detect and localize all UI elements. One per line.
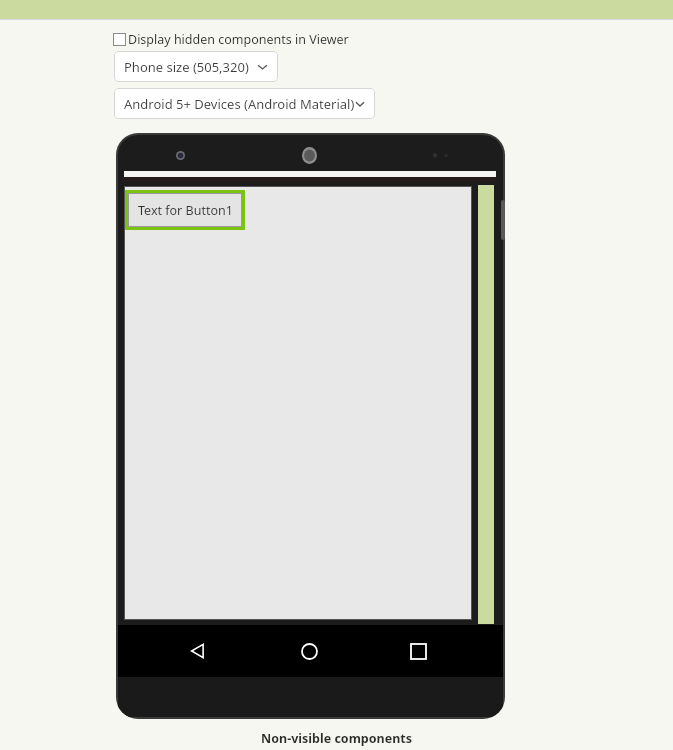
button[interactable]: Back <box>180 633 216 669</box>
button[interactable]: Android 5+ Devices (Android Material) <box>114 88 375 119</box>
staticText: Display hidden components in Viewer <box>128 31 349 48</box>
staticText: Android 5+ Devices (Android Material) <box>124 95 355 113</box>
button[interactable]: Home <box>291 633 327 669</box>
staticText: Text for Button1 <box>138 202 233 219</box>
staticText: Phone size (505,320) <box>124 58 249 76</box>
button[interactable]: Phone size (505,320) <box>114 51 278 82</box>
button[interactable]: Text for Button1 <box>125 190 245 230</box>
button[interactable]: Display hidden components in Viewer <box>113 31 349 48</box>
button[interactable]: Recent apps <box>400 633 436 669</box>
staticText: Non-visible components <box>261 730 412 747</box>
